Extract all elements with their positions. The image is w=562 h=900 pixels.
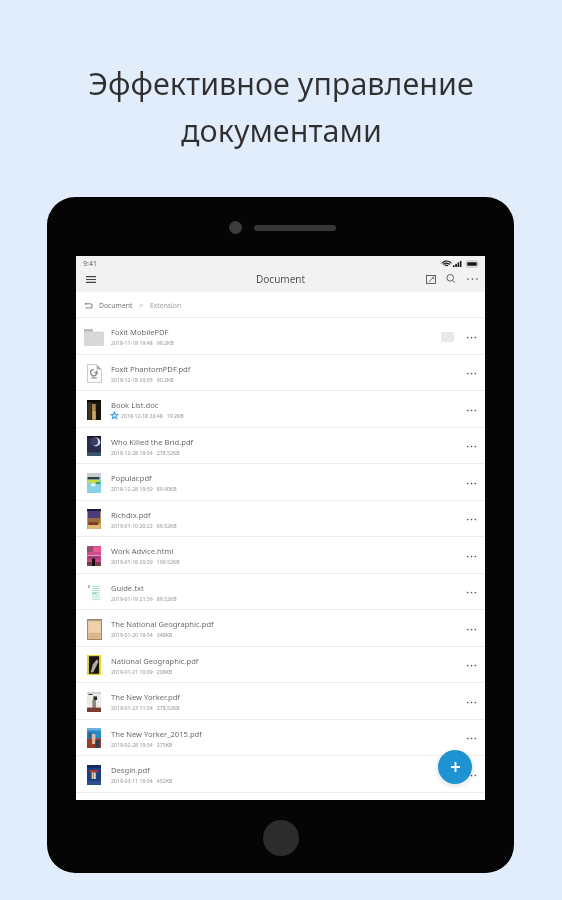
staticText: Foxit MobilePDF	[111, 327, 169, 337]
button[interactable]: Foxit MobilePDF	[76, 318, 485, 355]
button[interactable]: The New Yorker.pdf	[76, 683, 485, 720]
staticText: Who Killed the Brid.pdf	[111, 437, 194, 447]
staticText: 2019-01-18 20:59 199.52KB	[111, 558, 180, 565]
staticText: 2018-11-18 19:48 99.2KB	[111, 339, 174, 346]
button[interactable]: More	[461, 728, 481, 748]
button[interactable]: Book List.doc	[76, 391, 485, 428]
button[interactable]: Back	[81, 298, 95, 312]
staticText: National Geographic.pdf	[111, 656, 199, 666]
staticText: Popular.pdf	[111, 473, 152, 483]
staticText: 2019-03-11 16:34 452KB	[111, 777, 173, 784]
button[interactable]: Foxit PhantomPDF.pdf	[76, 355, 485, 391]
staticText: The New Yorker.pdf	[111, 692, 180, 702]
button[interactable]: Desgin.pdf	[76, 756, 485, 793]
button[interactable]: Search	[444, 272, 458, 286]
staticText: 2019-02-28 19:54 275KB	[111, 741, 173, 748]
button[interactable]: Richdix.pdf	[76, 501, 485, 537]
staticText: Foxit PhantomPDF.pdf	[111, 364, 191, 374]
button[interactable]: More	[461, 473, 481, 493]
button[interactable]: Work Advice.html	[76, 537, 485, 574]
button[interactable]: National Geographic.pdf	[76, 647, 485, 683]
button[interactable]: More	[461, 327, 481, 347]
button[interactable]: Popular.pdf	[76, 464, 485, 501]
button[interactable]: More	[461, 363, 481, 383]
button[interactable]: The New Yorker_2015.pdf	[76, 720, 485, 756]
button[interactable]: More	[461, 400, 481, 420]
staticText: Book List.doc	[111, 400, 159, 410]
staticText: 2019-01-10 20:22 69.52KB	[111, 522, 177, 529]
button[interactable]: More	[461, 582, 481, 602]
button[interactable]: Home	[263, 820, 299, 856]
staticText: Extension	[150, 301, 182, 310]
staticText: 2018-12-18 20:05 90.2KB	[111, 376, 174, 383]
button[interactable]: The National Geographic.pdf	[76, 610, 485, 647]
button[interactable]: More	[461, 619, 481, 639]
staticText: документами	[181, 109, 382, 151]
staticText: >	[139, 300, 144, 310]
button[interactable]: Add	[438, 750, 472, 784]
button[interactable]: More	[461, 765, 481, 785]
staticText: 2018-12-18 20:48 19.2KB	[121, 412, 184, 419]
button[interactable]: Guide.txt	[76, 574, 485, 610]
staticText: 2018-12-28 19:54 278.52KB	[111, 449, 180, 456]
button[interactable]: Document	[99, 301, 133, 310]
staticText: 2019-01-23 11:54 278.52KB	[111, 704, 180, 711]
button[interactable]: More	[461, 692, 481, 712]
staticText: 2018-12-28 19:59 89.40KB	[111, 485, 177, 492]
staticText: The National Geographic.pdf	[111, 619, 214, 629]
button[interactable]: More options	[465, 272, 479, 286]
button[interactable]: More	[461, 509, 481, 529]
button[interactable]: Menu	[85, 272, 96, 286]
button[interactable]: Who Killed the Brid.pdf	[76, 428, 485, 464]
staticText: Эффективное управление	[88, 62, 474, 104]
staticText: The New Yorker_2015.pdf	[111, 729, 202, 739]
button[interactable]: More	[461, 655, 481, 675]
button[interactable]: More	[461, 436, 481, 456]
staticText: 9:41	[83, 259, 97, 269]
button[interactable]: Edit	[424, 272, 438, 286]
staticText: Document	[256, 272, 306, 286]
staticText: Richdix.pdf	[111, 510, 151, 520]
staticText: 2019-01-21 10:09 208KB	[111, 668, 173, 675]
staticText: Desgin.pdf	[111, 765, 150, 775]
staticText: 2019-01-19 21:59 89.52KB	[111, 595, 177, 602]
staticText: Work Advice.html	[111, 546, 174, 556]
button[interactable]: More	[461, 546, 481, 566]
staticText: 2019-01-20 19:54 348KB	[111, 631, 173, 638]
staticText: Guide.txt	[111, 583, 144, 593]
